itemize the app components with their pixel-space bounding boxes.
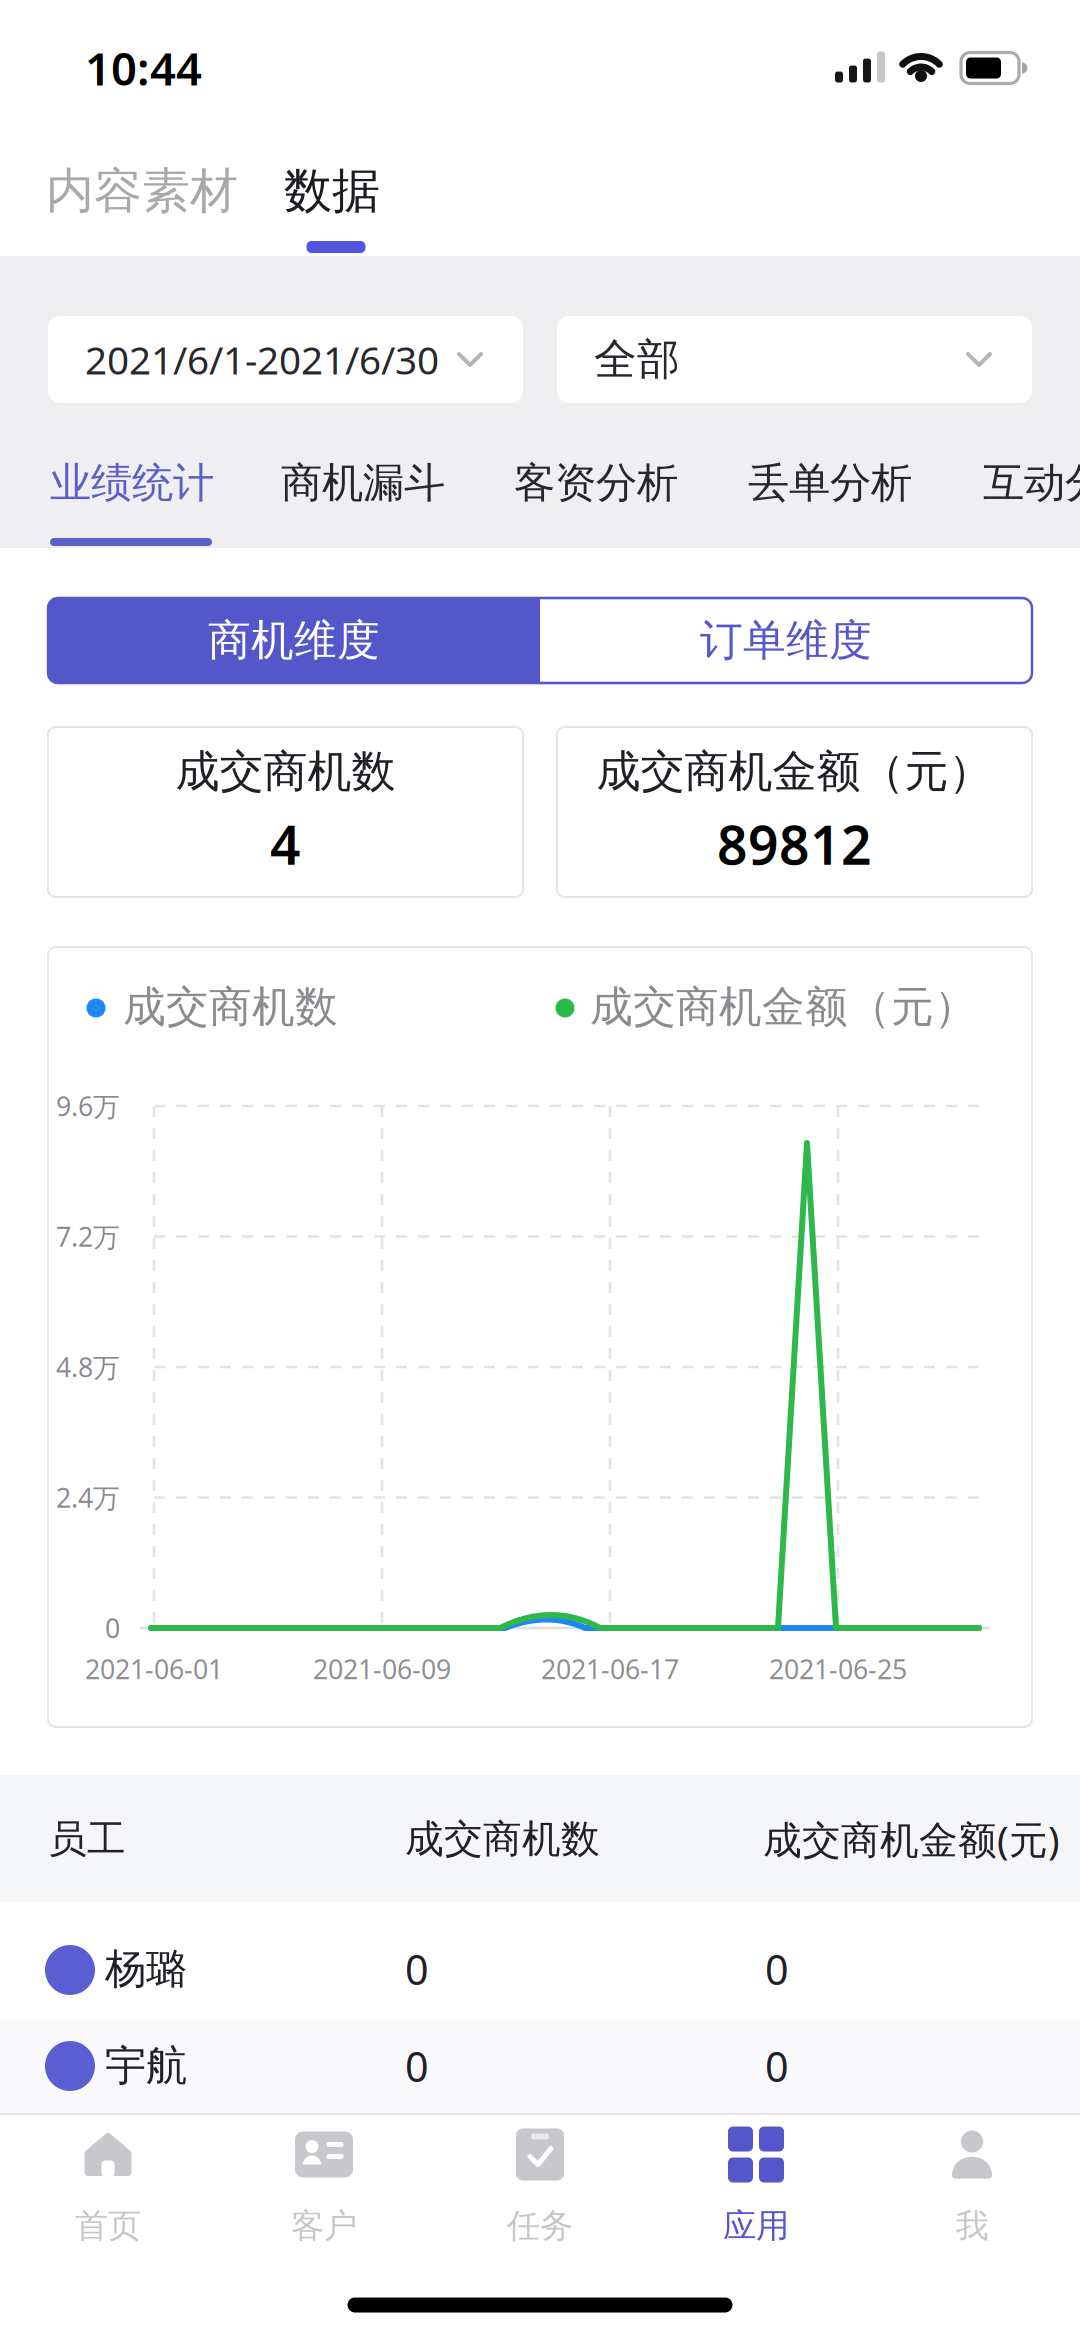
staticText: 内容素材 xyxy=(46,161,238,220)
staticText: 商机漏斗 xyxy=(281,458,445,508)
staticText: 客资分析 xyxy=(514,458,678,508)
staticText: 成交商机数 xyxy=(123,981,338,1033)
staticText: 任务 xyxy=(507,2205,573,2246)
staticText: 成交商机数 xyxy=(175,745,395,799)
button[interactable]: 客户 xyxy=(244,2121,404,2251)
button[interactable]: 任务 xyxy=(460,2121,620,2251)
staticText: 我 xyxy=(955,2205,988,2246)
staticText: 7.2万 xyxy=(56,1219,120,1254)
staticText: 成交商机金额(元) xyxy=(763,1813,1060,1865)
staticText: 2021-06-01 xyxy=(85,1651,223,1687)
staticText: 订单维度 xyxy=(700,614,872,667)
staticText: 2021/6/1-2021/6/30 xyxy=(85,334,439,385)
button[interactable]: 2021/6/1-2021/6/30 xyxy=(48,316,523,403)
staticText: 0 xyxy=(765,1942,789,1996)
staticText: 2021-06-17 xyxy=(541,1651,679,1687)
staticText: 业绩统计 xyxy=(50,458,214,508)
staticText: 2.4万 xyxy=(56,1480,120,1515)
button[interactable]: 互动分析 xyxy=(983,453,1080,513)
staticText: 2021-06-09 xyxy=(313,1651,451,1687)
staticText: 10:44 xyxy=(85,38,202,98)
button[interactable]: 丢单分析 xyxy=(748,453,928,513)
button[interactable]: 数据 xyxy=(284,151,424,231)
button[interactable]: 订单维度 xyxy=(540,598,1032,683)
staticText: 商机维度 xyxy=(208,614,380,667)
staticText: 89812 xyxy=(717,809,872,879)
staticText: 互动分析 xyxy=(983,458,1080,508)
staticText: 杨璐 xyxy=(105,1944,187,1994)
staticText: 全部 xyxy=(594,333,680,386)
button[interactable]: 业绩统计 xyxy=(50,453,230,513)
button[interactable]: 首页 xyxy=(28,2121,188,2251)
button[interactable]: 我 xyxy=(892,2121,1052,2251)
staticText: 0 xyxy=(765,2039,789,2093)
staticText: 4.8万 xyxy=(56,1349,120,1385)
staticText: 2021-06-25 xyxy=(769,1651,907,1687)
button[interactable]: 全部 xyxy=(557,316,1032,403)
staticText: 成交商机金额（元） xyxy=(590,981,977,1033)
staticText: 应用 xyxy=(723,2205,789,2246)
staticText: 宇航 xyxy=(105,2041,187,2091)
staticText: 成交商机数 xyxy=(405,1815,600,1863)
staticText: 数据 xyxy=(284,161,380,220)
button[interactable]: 内容素材 xyxy=(46,151,286,231)
staticText: 0 xyxy=(405,2039,429,2093)
staticText: 首页 xyxy=(75,2205,141,2246)
staticText: 0 xyxy=(105,1610,120,1646)
staticText: 丢单分析 xyxy=(748,458,912,508)
staticText: 员工 xyxy=(48,1815,126,1863)
button[interactable]: 商机维度 xyxy=(48,598,540,683)
staticText: 4 xyxy=(270,809,301,879)
staticText: 客户 xyxy=(291,2205,357,2246)
button[interactable]: 应用 xyxy=(676,2121,836,2251)
staticText: 9.6万 xyxy=(56,1088,120,1124)
staticText: 0 xyxy=(405,1942,429,1996)
staticText: 成交商机金额（元） xyxy=(596,745,992,799)
button[interactable]: 商机漏斗 xyxy=(281,453,461,513)
button[interactable]: 客资分析 xyxy=(514,453,694,513)
